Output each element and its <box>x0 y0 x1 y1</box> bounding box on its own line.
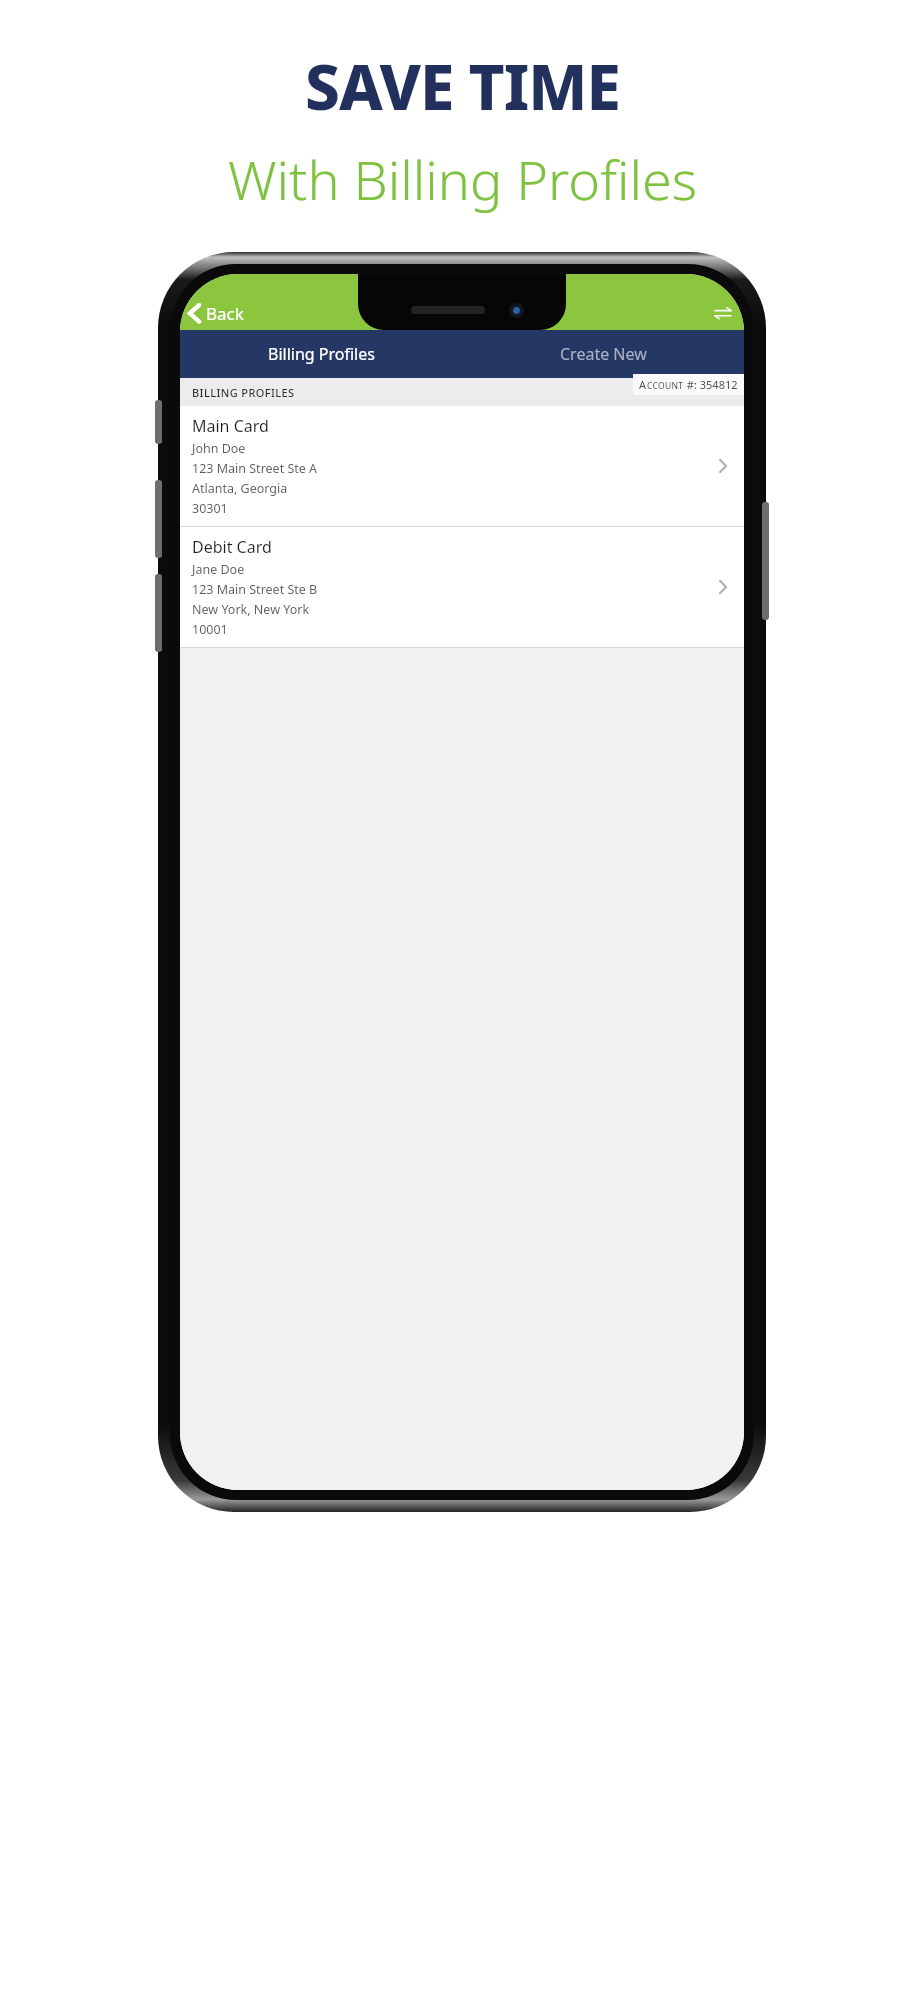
staticText: 10001 <box>192 621 228 638</box>
staticText: A <box>639 377 647 392</box>
button[interactable]: Transfer <box>702 296 744 330</box>
staticText: Create New <box>560 343 647 365</box>
other: Open Debit Card <box>712 576 734 598</box>
staticText: CCOUNT <box>647 380 684 392</box>
button[interactable]: Main Card <box>180 406 744 526</box>
staticText: Main Card <box>192 415 269 437</box>
button[interactable]: Billing Profiles <box>180 330 462 378</box>
button[interactable]: Debit Card <box>180 527 744 647</box>
staticText: Back <box>206 302 244 325</box>
staticText: 30301 <box>192 500 228 517</box>
button[interactable]: Create New <box>462 330 744 378</box>
staticText: BILLING PROFILES <box>192 385 295 400</box>
staticText: Billing Profiles <box>268 343 375 365</box>
button[interactable]: Back <box>180 296 258 330</box>
other: Open Main Card <box>712 455 734 477</box>
staticText: Jane Doe <box>192 561 245 578</box>
staticText: New York, New York <box>192 601 310 618</box>
staticText: 123 Main Street Ste A <box>192 460 318 477</box>
staticText: Atlanta, Georgia <box>192 480 288 497</box>
staticText: Debit Card <box>192 536 272 558</box>
staticText: #: 354812 <box>684 377 738 392</box>
staticText: SAVE TIME <box>305 44 620 128</box>
staticText: 123 Main Street Ste B <box>192 581 318 598</box>
staticText: John Doe <box>192 440 246 457</box>
staticText: With Billing Profiles <box>228 142 697 216</box>
